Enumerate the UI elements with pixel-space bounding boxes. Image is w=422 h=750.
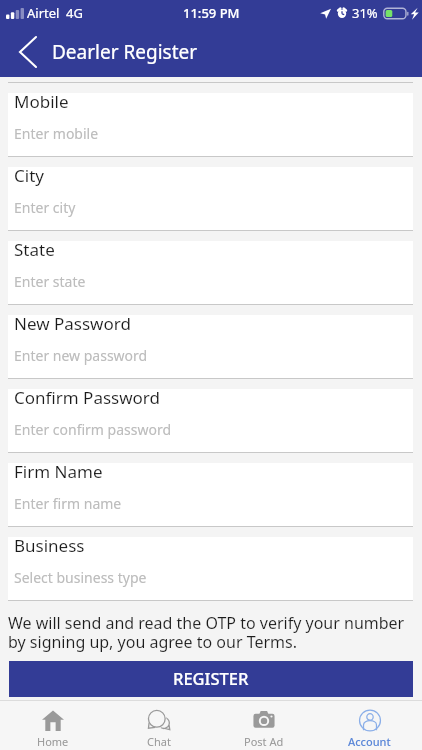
- button[interactable]: Confirm Password: [8, 389, 413, 452]
- staticText: Enter firm name: [14, 494, 122, 513]
- staticText: REGISTER: [173, 667, 249, 689]
- staticText: Dearler Register: [52, 39, 198, 65]
- button[interactable]: New Password: [8, 315, 413, 378]
- staticText: 31%: [352, 4, 378, 22]
- staticText: Business: [14, 534, 85, 557]
- staticText: Home: [37, 734, 69, 749]
- button[interactable]: Mobile: [8, 93, 413, 156]
- button[interactable]: Account: [317, 701, 422, 750]
- button[interactable]: REGISTER: [9, 661, 413, 697]
- staticText: Enter state: [14, 272, 86, 291]
- button[interactable]: Back: [0, 26, 52, 77]
- staticText: 4G: [66, 4, 83, 22]
- staticText: Airtel: [27, 4, 60, 22]
- staticText: City: [14, 164, 44, 187]
- staticText: 11:59 PM: [183, 4, 240, 22]
- staticText: Mobile: [14, 90, 69, 113]
- staticText: Enter city: [14, 198, 76, 217]
- staticText: State: [14, 238, 55, 261]
- button[interactable]: State: [8, 241, 413, 304]
- button[interactable]: Chat: [106, 701, 211, 750]
- staticText: Chat: [147, 734, 171, 749]
- staticText: New Password: [14, 312, 131, 335]
- button[interactable]: Firm Name: [8, 463, 413, 526]
- staticText: Confirm Password: [14, 386, 160, 409]
- staticText: Post Ad: [244, 734, 284, 749]
- button[interactable]: City: [8, 167, 413, 230]
- staticText: Firm Name: [14, 460, 103, 483]
- button[interactable]: Business: [8, 537, 413, 600]
- staticText: Enter mobile: [14, 124, 99, 143]
- button[interactable]: Post Ad: [211, 701, 316, 750]
- staticText: Enter confirm password: [14, 420, 172, 439]
- button[interactable]: Home: [0, 701, 105, 750]
- staticText: Select business type: [14, 568, 147, 587]
- staticText: Enter new password: [14, 346, 148, 365]
- staticText: We will send and read the OTP to verify …: [8, 612, 408, 653]
- staticText: Account: [348, 734, 391, 749]
